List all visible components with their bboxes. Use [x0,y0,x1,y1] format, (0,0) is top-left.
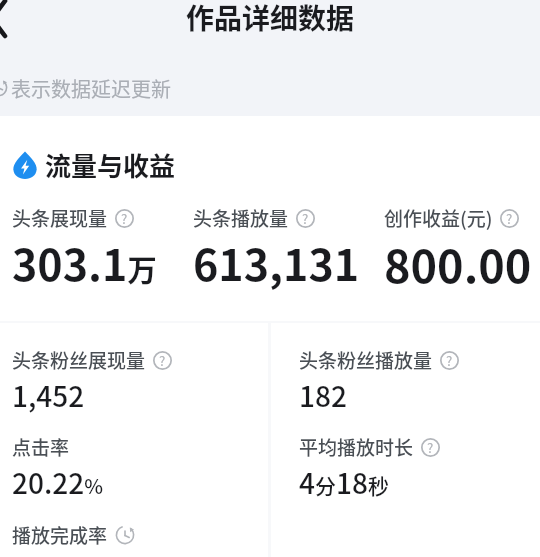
staticText: 303.1万 [12,231,157,293]
staticText: 头条粉丝展现量 [12,346,146,374]
staticText: 头条播放量 [193,204,289,232]
button[interactable]: 播放完成率 [12,521,135,549]
staticText: ? [506,209,513,228]
staticText: ? [159,351,166,370]
staticText: 作品详细数据 [186,0,355,38]
staticText: 创作收益(元) [384,204,493,232]
button[interactable]: 头条粉丝展现量 [12,346,172,374]
staticText: 头条粉丝播放量 [299,346,433,374]
staticText: ? [446,351,453,370]
staticText: 20.22% [12,462,103,503]
button[interactable]: 头条粉丝播放量 [299,346,459,374]
staticText: 播放完成率 [12,521,108,549]
staticText: ? [302,209,309,228]
button[interactable]: 创作收益(元) [384,204,519,232]
staticText: 4分18秒 [299,462,389,503]
button[interactable]: 头条展现量 [12,204,134,232]
staticText: 182 [299,375,347,416]
staticText: 流量与收益 [45,146,176,184]
button[interactable]: 平均播放时长 [299,433,440,461]
button[interactable]: Back [0,0,46,44]
staticText: 头条展现量 [12,204,108,232]
button[interactable]: 点击率 [12,433,70,461]
staticText: 平均播放时长 [299,433,414,461]
staticText: ? [121,209,128,228]
staticText: ? [427,438,434,457]
staticText: 点击率 [12,433,70,461]
staticText: 表示数据延迟更新 [11,74,171,103]
button[interactable]: 头条播放量 [193,204,315,232]
staticText: 800.00 [384,231,532,296]
staticText: 613,131 [193,231,360,293]
staticText: 1,452 [12,375,85,416]
